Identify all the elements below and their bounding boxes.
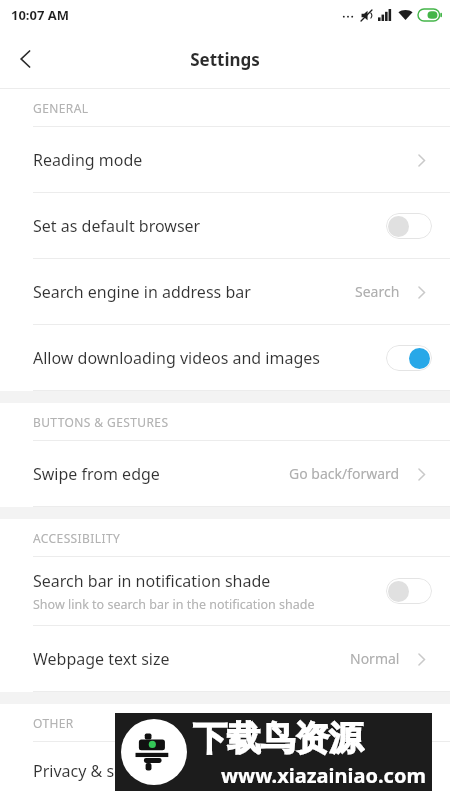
button[interactable]: Set as default browser <box>0 193 450 258</box>
button[interactable]: Allow downloading videos and images <box>0 325 450 390</box>
button[interactable]: Toggle off <box>386 578 432 604</box>
staticText: Search engine in address bar <box>33 281 251 303</box>
staticText: Allow downloading videos and images <box>33 347 320 369</box>
staticText: 10:07 AM <box>11 6 70 24</box>
staticText: Show link to search bar in the notificat… <box>33 596 315 613</box>
button[interactable]: Reading mode <box>0 127 450 192</box>
button[interactable]: Back <box>0 33 52 85</box>
button[interactable]: Search engine in address bar <box>0 259 450 324</box>
staticText: BUTTONS & GESTURES <box>33 414 169 430</box>
button[interactable]: Search bar in notification shade <box>0 557 450 625</box>
staticText: Search bar in notification shade <box>33 570 271 592</box>
staticText: ACCESSIBILITY <box>33 530 121 546</box>
button[interactable]: Toggle off <box>386 213 432 239</box>
staticText: Reading mode <box>33 149 143 171</box>
staticText: Set as default browser <box>33 215 201 237</box>
staticText: 下载鸟资源 <box>193 717 363 760</box>
staticText: Settings <box>190 48 260 71</box>
staticText: Webpage text size <box>33 648 170 670</box>
button[interactable]: Webpage text size <box>0 626 450 691</box>
staticText: OTHER <box>33 715 74 731</box>
staticText: Go back/forward <box>289 464 400 483</box>
staticText: GENERAL <box>33 100 89 116</box>
button[interactable]: Swipe from edge <box>0 441 450 506</box>
button[interactable]: Privacy & security <box>0 742 450 800</box>
staticText: www.xiazainiao.com <box>221 762 426 789</box>
staticText: Swipe from edge <box>33 463 160 485</box>
staticText: Normal <box>350 649 400 668</box>
button[interactable]: Toggle on <box>386 345 432 371</box>
staticText: Privacy & security <box>33 760 166 782</box>
staticText: Search <box>355 282 400 301</box>
